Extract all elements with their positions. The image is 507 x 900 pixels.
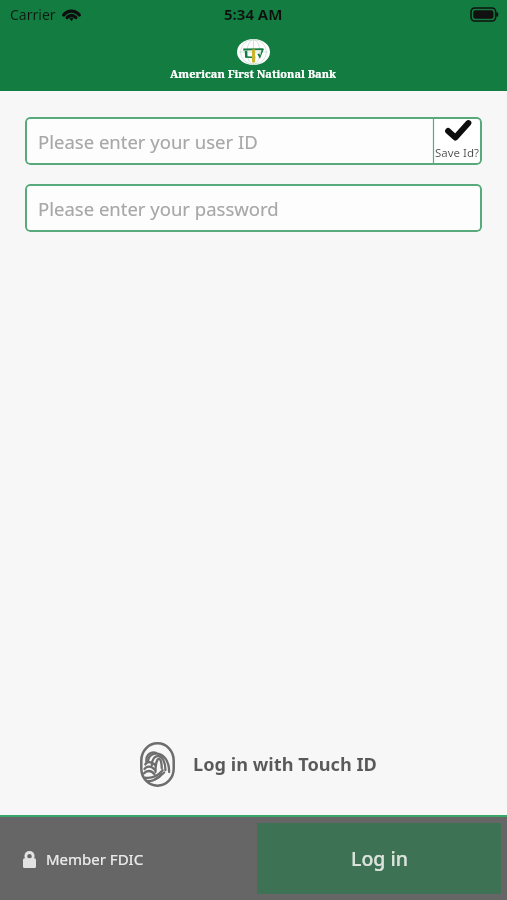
staticText: Save Id? — [435, 145, 480, 160]
button[interactable]: Log in — [257, 823, 501, 894]
staticText: Carrier — [10, 5, 56, 24]
button[interactable]: Log in with Touch ID — [129, 735, 387, 794]
staticText: American First National Bank — [170, 66, 337, 81]
button[interactable]: Member FDIC — [0, 843, 152, 875]
button[interactable]: Please enter your password — [25, 184, 482, 232]
button[interactable]: Please enter your user ID — [25, 117, 482, 165]
staticText: Log in with Touch ID — [193, 752, 377, 777]
staticText: 5:34 AM — [224, 4, 283, 24]
staticText: Please enter your user ID — [38, 129, 433, 154]
staticText: Please enter your password — [38, 196, 279, 221]
staticText: Log in — [351, 845, 408, 872]
button[interactable]: Save Id — [433, 117, 482, 165]
staticText: Member FDIC — [46, 849, 144, 869]
